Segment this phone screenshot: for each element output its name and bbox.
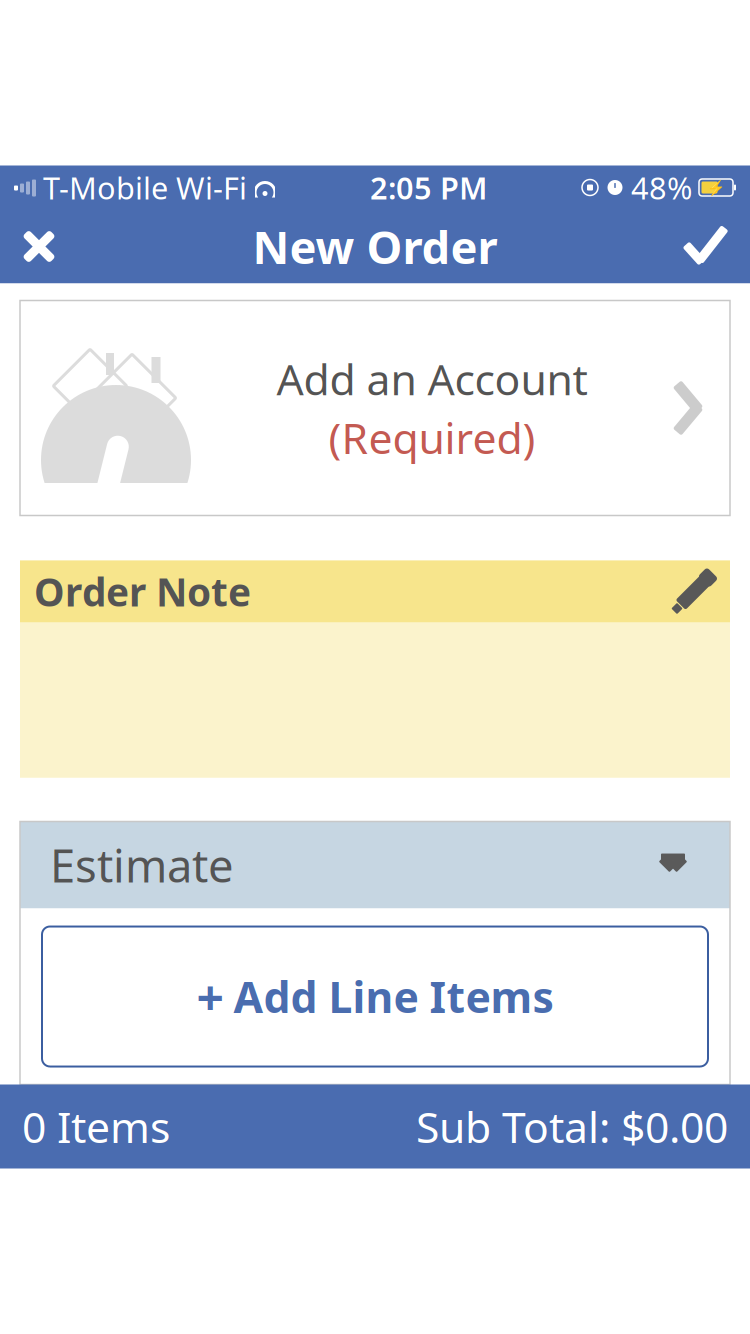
staticText: 0 Items: [22, 1098, 170, 1155]
staticText: 48%: [631, 167, 692, 208]
staticText: Add Line Items: [233, 968, 553, 1025]
staticText: Sub Total: $0.00: [416, 1098, 728, 1155]
staticText: Order Note: [34, 566, 251, 617]
button[interactable]: +: [42, 926, 708, 1066]
staticText: 2:05 PM: [370, 167, 487, 208]
staticText: +: [196, 965, 223, 1028]
staticText: Estimate: [50, 835, 234, 895]
button[interactable]: Save order: [664, 209, 750, 283]
staticText: New Order: [252, 216, 497, 277]
staticText: ⚡: [707, 179, 725, 196]
button[interactable]: Add an Account: [20, 300, 730, 515]
button[interactable]: Estimate: [20, 821, 730, 908]
staticText: (Required): [328, 409, 535, 466]
staticText: Add an Account: [276, 350, 587, 407]
button[interactable]: Order Note: [20, 560, 730, 622]
staticText: T-Mobile Wi-Fi: [43, 167, 247, 208]
button[interactable]: Close: [0, 209, 78, 283]
